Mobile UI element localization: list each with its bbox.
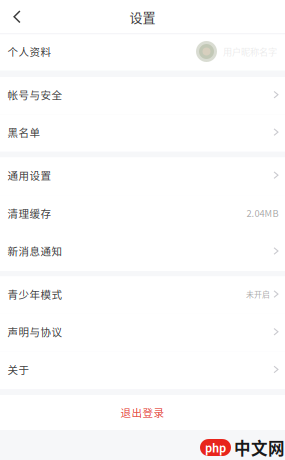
staticText: 黑名单 (7, 124, 40, 140)
button[interactable]: 青少年模式 (0, 276, 285, 314)
staticText: 通用设置 (7, 167, 51, 183)
staticText: 用户昵称名字 (217, 45, 283, 58)
button[interactable]: 帐号与安全 (0, 77, 285, 114)
staticText: php (205, 439, 226, 456)
staticText: 青少年模式 (7, 286, 62, 302)
staticText: 未开启 (246, 288, 270, 300)
button[interactable]: 退出登录 (0, 395, 285, 430)
staticText: 关于 (7, 362, 29, 377)
staticText: 2.04MB (246, 206, 278, 220)
staticText: 清理缓存 (7, 205, 51, 221)
staticText: 中文网 (234, 436, 285, 459)
staticText: 新消息通知 (7, 243, 62, 259)
button[interactable]: 通用设置 (0, 157, 285, 195)
button[interactable]: 声明与协议 (0, 314, 285, 352)
button[interactable]: 个人资料 (0, 34, 285, 71)
button[interactable]: 关于 (0, 352, 285, 389)
staticText: 帐号与安全 (7, 87, 62, 102)
staticText: 声明与协议 (7, 324, 62, 339)
button[interactable]: 黑名单 (0, 114, 285, 152)
staticText: 个人资料 (7, 44, 51, 59)
staticText: 退出登录 (120, 405, 164, 420)
button[interactable]: 新消息通知 (0, 233, 285, 271)
button[interactable]: 清理缓存 (0, 195, 285, 233)
button[interactable]: 返回 (0, 0, 34, 33)
staticText: 设置 (129, 7, 155, 26)
